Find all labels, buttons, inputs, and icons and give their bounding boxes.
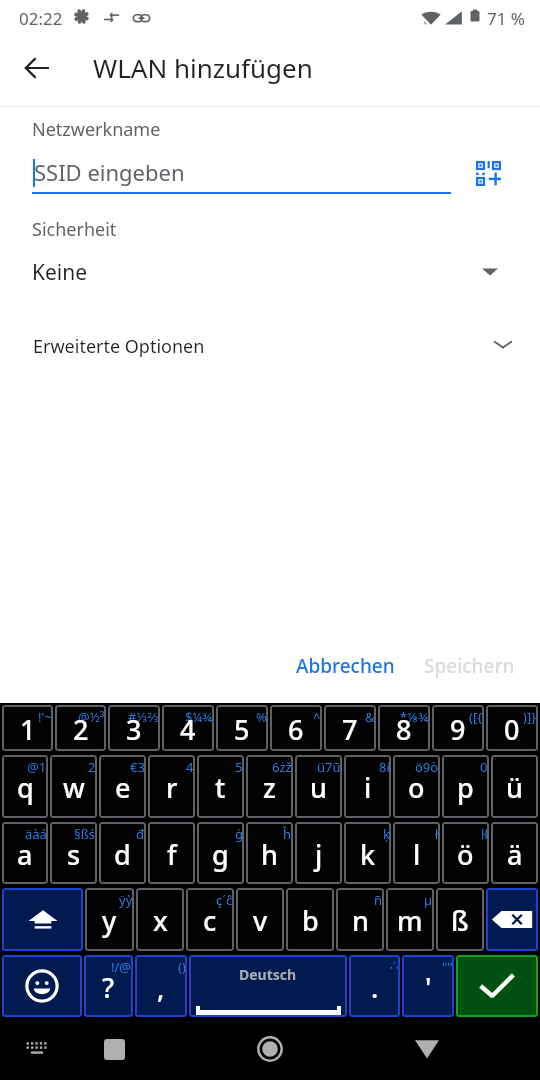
staticText: h — [261, 836, 278, 873]
button[interactable]: ł — [393, 822, 440, 884]
button[interactable]: ü — [491, 755, 538, 818]
staticText: 02:22 — [19, 7, 63, 30]
staticText: y — [102, 902, 117, 939]
staticText: b — [302, 902, 319, 939]
button[interactable]: Zurück — [404, 1026, 450, 1072]
button[interactable]: f — [148, 822, 195, 884]
staticText: 4 — [186, 758, 194, 776]
button[interactable]: @1 — [2, 755, 48, 818]
staticText: ß — [451, 902, 469, 939]
button[interactable]: !'~ — [2, 705, 53, 751]
button[interactable]: ŀľ — [442, 822, 489, 884]
button[interactable]: ģ — [197, 822, 244, 884]
button[interactable]: Übersicht — [91, 1026, 137, 1072]
button[interactable]: Keine — [0, 252, 540, 296]
button[interactable]: Emoji — [2, 955, 82, 1017]
button[interactable]: j — [295, 822, 342, 884]
button[interactable]: ç´ĉ — [186, 888, 234, 951]
staticText: 5 — [235, 758, 243, 776]
staticText: c — [203, 902, 217, 939]
staticText: $¼¾ — [185, 708, 213, 726]
staticText: Speichern — [424, 653, 515, 679]
button[interactable]: () — [135, 955, 187, 1017]
button[interactable]: b — [286, 888, 334, 951]
staticText: 4 — [180, 711, 196, 748]
staticText: 0 — [480, 758, 488, 776]
staticText: ^ — [313, 708, 321, 726]
button[interactable]: & — [324, 705, 376, 751]
button[interactable]: Startbildschirm — [247, 1026, 293, 1072]
button[interactable]: $¼¾ — [162, 705, 214, 751]
button[interactable]: 8í — [344, 755, 391, 818]
staticText: *⅛¾ — [400, 708, 429, 726]
button[interactable]: Deutsch — [189, 955, 347, 1017]
staticText: ü7ū — [317, 758, 341, 776]
button[interactable]: x — [136, 888, 184, 951]
staticText: 7 — [342, 711, 358, 748]
button[interactable]: ([{ — [432, 705, 484, 751]
button[interactable]: ä — [491, 822, 538, 884]
button[interactable]: Eingabe — [456, 955, 538, 1017]
staticText: 2 — [88, 758, 96, 776]
button[interactable]: Abbrechen — [286, 645, 405, 687]
button[interactable]: *⅛¾ — [378, 705, 430, 751]
staticText: p — [457, 769, 474, 806]
staticText: d — [114, 836, 131, 873]
staticText: 5 — [234, 711, 250, 748]
button[interactable]: 4 — [148, 755, 195, 818]
button[interactable]: ^ — [270, 705, 322, 751]
button[interactable]: QR-Code scannen — [463, 148, 513, 198]
button[interactable]: €3 — [99, 755, 146, 818]
staticText: SSID eingeben — [34, 157, 185, 187]
button[interactable]: v — [236, 888, 284, 951]
button[interactable]: 5 — [197, 755, 244, 818]
button[interactable]: #⅓⅔ — [108, 705, 160, 751]
button[interactable]: ö9ò — [393, 755, 440, 818]
button[interactable]: Löschen — [486, 888, 538, 951]
button[interactable]: 2 — [50, 755, 97, 818]
button[interactable]: Tastatur schließen — [14, 1026, 60, 1072]
staticText: () — [178, 958, 186, 976]
button[interactable]: ü7ū — [295, 755, 342, 818]
button[interactable]: "" — [402, 955, 454, 1017]
staticText: w — [63, 769, 85, 806]
staticText: r — [166, 769, 178, 806]
button[interactable]: ñ — [336, 888, 384, 951]
staticText: 0 — [504, 711, 520, 748]
button[interactable]: ķ — [344, 822, 391, 884]
button[interactable]: Speichern — [414, 645, 525, 687]
button[interactable]: @½³ — [55, 705, 106, 751]
staticText: j — [315, 836, 323, 873]
staticText: 1 — [20, 711, 36, 748]
staticText: )]} — [523, 708, 537, 726]
button[interactable]: 6żž — [246, 755, 293, 818]
staticText: @½³ — [78, 708, 105, 726]
staticText: ? — [102, 969, 115, 1006]
button[interactable]: ∴ — [349, 955, 400, 1017]
staticText: f — [167, 836, 177, 873]
staticText: ' — [425, 969, 432, 1006]
staticText: ñ — [374, 891, 383, 909]
button[interactable]: ÿỳ — [85, 888, 134, 951]
button[interactable]: Umschalttaste — [2, 888, 83, 951]
staticText: äàá — [25, 825, 47, 843]
button[interactable]: đ — [99, 822, 146, 884]
staticText: ü — [506, 769, 523, 806]
button[interactable]: 0 — [442, 755, 489, 818]
staticText: 3 — [126, 711, 142, 748]
button[interactable]: !/@ — [84, 955, 133, 1017]
button[interactable]: Zurück — [14, 45, 60, 91]
button[interactable]: äàá — [2, 822, 48, 884]
staticText: x — [153, 902, 168, 939]
button[interactable]: Erweiterte Optionen — [0, 325, 540, 371]
button[interactable]: )]} — [486, 705, 538, 751]
button[interactable]: §ßś — [50, 822, 97, 884]
button[interactable]: µ — [386, 888, 434, 951]
button[interactable]: ĥ — [246, 822, 293, 884]
staticText: 6 — [288, 711, 304, 748]
button[interactable]: % — [216, 705, 268, 751]
staticText: z — [263, 769, 276, 806]
button[interactable]: ß — [436, 888, 484, 951]
staticText: WLAN hinzufügen — [93, 50, 313, 85]
staticText: đ — [136, 825, 145, 843]
